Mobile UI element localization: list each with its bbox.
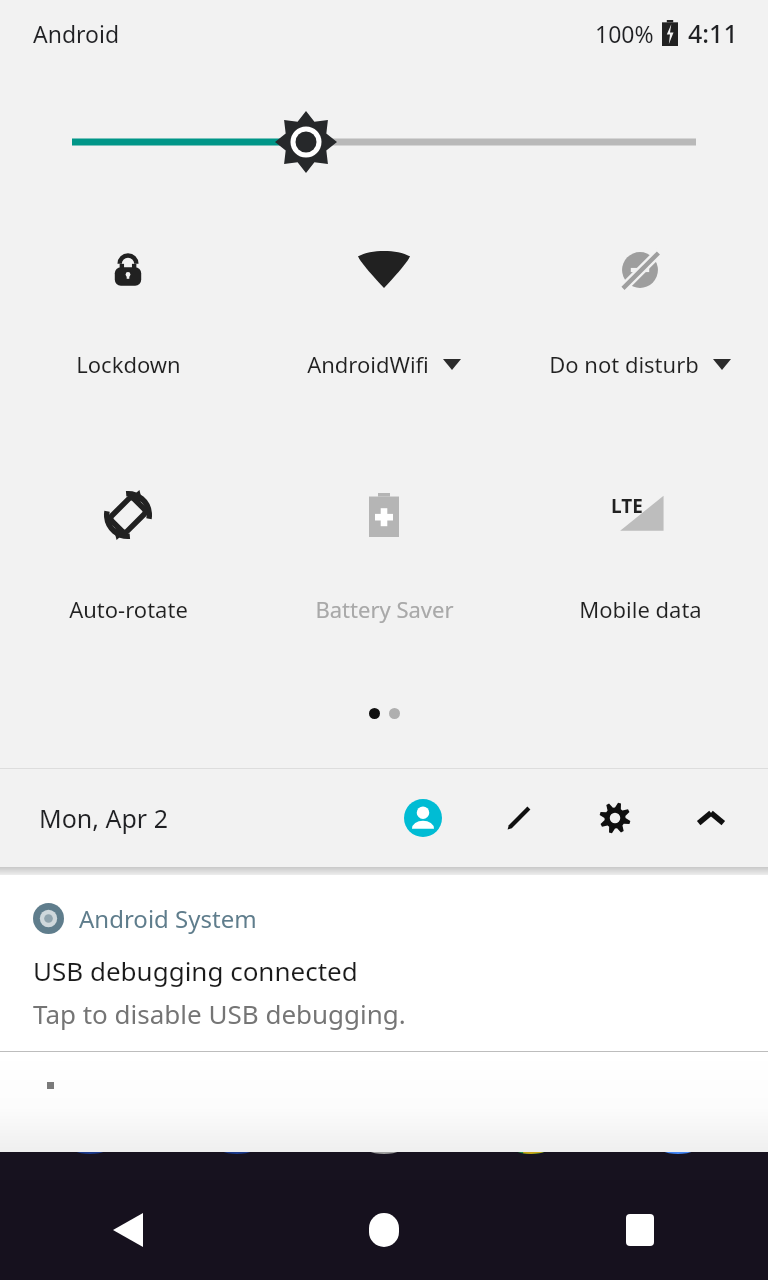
- staticText: Auto-rotate: [69, 594, 188, 624]
- staticText: 100%: [595, 18, 654, 49]
- staticText: Mon, Apr 2: [39, 801, 168, 835]
- button[interactable]: Android System: [0, 875, 768, 1052]
- staticText: Battery Saver: [315, 594, 454, 624]
- staticText: Android: [33, 18, 120, 49]
- staticText: Do not disturb: [549, 349, 699, 379]
- button[interactable]: [0, 114, 768, 170]
- button[interactable]: Collapse: [692, 799, 730, 837]
- button[interactable]: Lockdown: [0, 235, 256, 383]
- staticText: 4:11: [688, 16, 738, 50]
- button[interactable]: Recent apps: [512, 1180, 768, 1280]
- button[interactable]: User: [404, 799, 442, 837]
- button[interactable]: Do not disturb: [512, 235, 768, 383]
- staticText: LTE: [611, 493, 643, 519]
- button[interactable]: Settings: [596, 799, 634, 837]
- staticText: Mobile data: [579, 594, 702, 624]
- staticText: AndroidWifi: [307, 349, 429, 379]
- button[interactable]: Edit: [500, 799, 538, 837]
- button[interactable]: Auto-rotate: [0, 480, 256, 628]
- button[interactable]: Home: [256, 1180, 512, 1280]
- button[interactable]: AndroidWifi: [256, 235, 512, 383]
- staticText: Tap to disable USB debugging.: [33, 996, 406, 1031]
- staticText: Android System: [79, 902, 257, 935]
- staticText: USB debugging connected: [33, 953, 358, 988]
- staticText: Lockdown: [76, 349, 181, 379]
- button[interactable]: Battery Saver: [256, 480, 512, 628]
- button[interactable]: LTE: [512, 480, 768, 628]
- button[interactable]: Back: [0, 1180, 256, 1280]
